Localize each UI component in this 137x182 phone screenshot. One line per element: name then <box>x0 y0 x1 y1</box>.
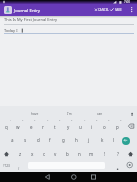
staticText: j <box>88 137 90 143</box>
staticText: c <box>43 151 46 157</box>
staticText: SAVE <box>115 8 122 12</box>
button[interactable]: q <box>0 120 12 134</box>
button[interactable] <box>126 161 134 169</box>
staticText: 7 <box>84 119 86 122</box>
button[interactable]: w <box>12 120 24 134</box>
staticText: f <box>49 137 51 143</box>
button[interactable] <box>122 137 130 145</box>
button[interactable]: l <box>108 133 120 147</box>
button[interactable] <box>125 120 137 134</box>
button[interactable]: d <box>32 133 44 147</box>
staticText: z <box>19 151 22 157</box>
staticText: s <box>24 137 27 143</box>
button[interactable]: SAVE <box>109 5 123 15</box>
button[interactable]: have <box>31 112 39 116</box>
button[interactable] <box>0 26 137 35</box>
staticText: can <box>97 112 103 116</box>
button[interactable]: ! <box>99 147 111 161</box>
staticText: k <box>101 137 104 143</box>
button[interactable]: a <box>6 133 18 147</box>
button[interactable] <box>0 16 137 26</box>
staticText: w <box>16 124 20 130</box>
button[interactable] <box>114 164 122 172</box>
staticText: t <box>54 124 56 130</box>
staticText: have <box>31 112 39 116</box>
button[interactable]: g <box>57 133 69 147</box>
button[interactable]: f <box>44 133 56 147</box>
staticText: i <box>91 124 93 130</box>
button[interactable]: can <box>97 112 103 116</box>
staticText: n <box>78 151 81 157</box>
staticText: 2 <box>22 119 24 122</box>
staticText: ? <box>117 151 119 157</box>
button[interactable]: r <box>37 120 49 134</box>
button[interactable]: ? <box>112 147 124 161</box>
button[interactable] <box>89 173 98 182</box>
staticText: h <box>75 137 78 143</box>
staticText: 9 <box>108 119 110 122</box>
button[interactable]: k <box>96 133 108 147</box>
button[interactable]: y <box>62 120 74 134</box>
button[interactable] <box>128 5 135 15</box>
staticText: d <box>37 137 40 143</box>
staticText: I'm <box>67 112 72 116</box>
staticText: o <box>103 124 106 130</box>
staticText: ?123 <box>3 164 10 168</box>
button[interactable]: z <box>14 147 26 161</box>
button[interactable]: s <box>19 133 31 147</box>
button[interactable]: I'm <box>67 112 72 116</box>
staticText: 8 <box>96 119 98 122</box>
staticText: This Is My First Journal Entry <box>4 17 58 22</box>
button[interactable]: t <box>49 120 61 134</box>
button[interactable]: u <box>74 120 86 134</box>
button[interactable]: n <box>73 147 85 161</box>
button[interactable]: CANCEL <box>93 5 108 15</box>
staticText: 4 <box>47 119 49 122</box>
button[interactable]: i <box>86 120 98 134</box>
staticText: q <box>5 124 8 130</box>
button[interactable]: c <box>38 147 50 161</box>
staticText: y <box>67 124 70 130</box>
staticText: 7:00 <box>124 0 130 4</box>
staticText: 5 <box>59 119 61 122</box>
staticText: Journal Entry <box>14 7 41 13</box>
staticText: 3 <box>34 119 36 122</box>
button[interactable]: b <box>61 147 73 161</box>
staticText: p <box>116 124 119 130</box>
staticText: x <box>31 151 34 157</box>
staticText: ! <box>104 151 106 157</box>
button[interactable]: o <box>98 120 110 134</box>
staticText: e <box>30 124 33 130</box>
button[interactable]: m <box>85 147 97 161</box>
staticText: r <box>42 124 44 130</box>
button[interactable]: p <box>111 120 123 134</box>
button[interactable]: / <box>18 167 20 171</box>
staticText: CANCEL <box>98 8 109 12</box>
button[interactable]: j <box>83 133 95 147</box>
button[interactable]: e <box>25 120 37 134</box>
staticText: g <box>62 137 65 143</box>
staticText: u <box>79 124 82 130</box>
staticText: 1 <box>10 119 12 122</box>
staticText: 6 <box>71 119 73 122</box>
button[interactable] <box>43 173 52 182</box>
staticText: 0 <box>120 119 122 122</box>
staticText: Today I <box>4 28 18 33</box>
button[interactable]: ?123 <box>3 164 10 168</box>
button[interactable]: x <box>26 147 38 161</box>
staticText: l <box>113 137 115 143</box>
button[interactable] <box>69 173 78 182</box>
button[interactable]: v <box>49 147 61 161</box>
staticText: a <box>11 137 14 143</box>
staticText: v <box>54 151 57 157</box>
button[interactable]: h <box>70 133 82 147</box>
staticText: / <box>18 167 20 171</box>
staticText: m <box>89 151 94 157</box>
staticText: b <box>66 151 69 157</box>
